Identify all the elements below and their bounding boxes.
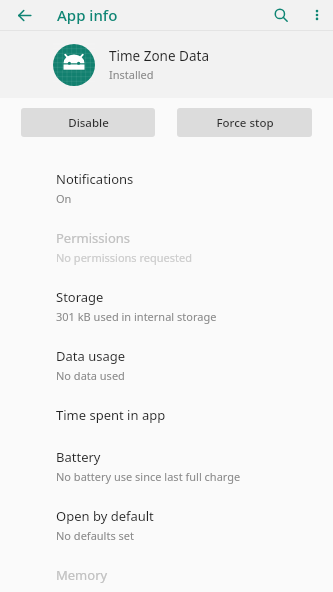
staticText: Open by default <box>56 507 154 525</box>
staticText: No permissions requested <box>56 250 192 265</box>
staticText: Disable <box>68 115 109 131</box>
staticText: No battery use since last full charge <box>56 469 241 484</box>
staticText: App info <box>57 5 118 25</box>
button[interactable]: Time Zone Data <box>0 31 333 98</box>
staticText: Data usage <box>56 347 126 365</box>
staticText: Time spent in app <box>56 406 166 424</box>
staticText: No data used <box>56 368 125 383</box>
staticText: No defaults set <box>56 528 134 543</box>
button[interactable]: Memory <box>0 555 333 592</box>
staticText: Time Zone Data <box>109 47 209 65</box>
button[interactable]: Time spent in app <box>0 395 333 437</box>
button[interactable]: Force stop <box>177 108 312 137</box>
button[interactable]: Notifications <box>0 159 333 218</box>
button[interactable]: Permissions <box>0 218 333 277</box>
button[interactable]: Back <box>10 1 38 29</box>
staticText: Installed <box>109 67 154 82</box>
button[interactable]: Search <box>267 1 295 29</box>
staticText: On <box>56 191 72 206</box>
button[interactable]: Disable <box>21 108 155 137</box>
staticText: 301 kB used in internal storage <box>56 309 217 324</box>
staticText: Force stop <box>216 115 274 131</box>
button[interactable]: More options <box>303 1 331 29</box>
button[interactable]: Open by default <box>0 496 333 555</box>
staticText: Permissions <box>56 229 131 247</box>
staticText: Notifications <box>56 170 134 188</box>
button[interactable]: Data usage <box>0 336 333 395</box>
staticText: Storage <box>56 288 104 306</box>
staticText: Battery <box>56 448 101 466</box>
button[interactable]: Storage <box>0 277 333 336</box>
staticText: Memory <box>56 566 108 584</box>
button[interactable]: Battery <box>0 437 333 496</box>
